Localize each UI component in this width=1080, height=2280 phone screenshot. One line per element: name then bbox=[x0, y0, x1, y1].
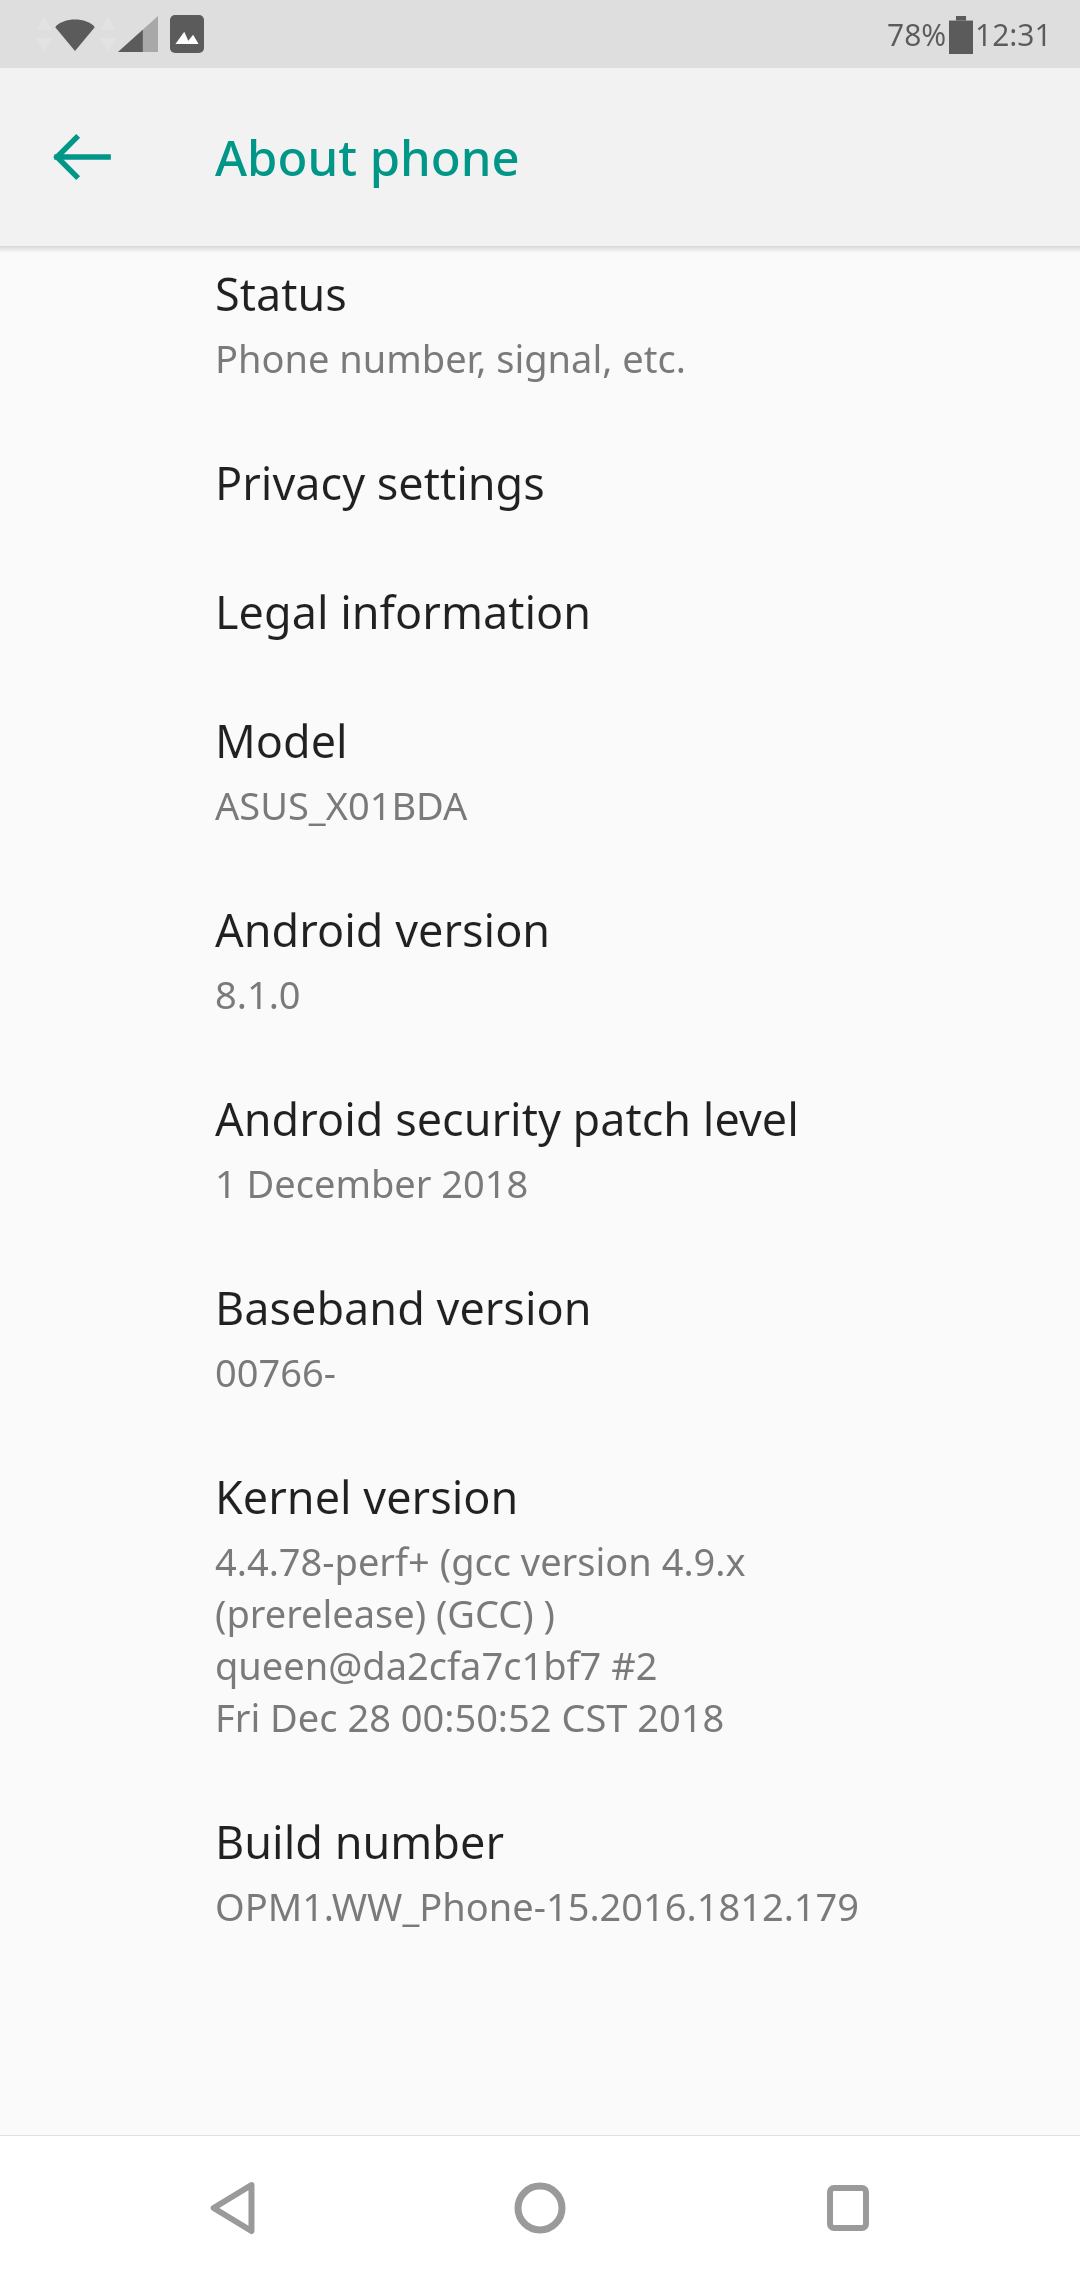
staticText: Kernel version bbox=[215, 1466, 519, 1527]
staticText: Model bbox=[215, 710, 348, 771]
staticText: queen@da2cfa7c1bf7 #2 bbox=[215, 1639, 658, 1691]
staticText: 78% bbox=[887, 14, 947, 55]
staticText: Android security patch level bbox=[215, 1088, 799, 1149]
staticText: Status bbox=[215, 263, 347, 324]
button[interactable]: Android version bbox=[215, 899, 865, 1020]
button[interactable]: Home bbox=[465, 2136, 615, 2280]
staticText: ASUS_X01BDA bbox=[215, 779, 468, 831]
button[interactable]: Build number bbox=[215, 1811, 865, 1932]
button[interactable]: Privacy settings bbox=[215, 452, 865, 513]
staticText: Baseband version bbox=[215, 1277, 592, 1338]
button[interactable]: Back bbox=[28, 103, 136, 211]
button[interactable]: Legal information bbox=[215, 581, 865, 642]
button[interactable]: Status bbox=[215, 263, 865, 384]
button[interactable]: Kernel version bbox=[215, 1466, 865, 1743]
staticText: 8.1.0 bbox=[215, 968, 301, 1020]
button[interactable]: Baseband version bbox=[215, 1277, 865, 1398]
staticText: 12:31 bbox=[975, 14, 1052, 55]
button[interactable]: Android security patch level bbox=[215, 1088, 865, 1209]
staticText: Privacy settings bbox=[215, 452, 545, 513]
staticText: Android version bbox=[215, 899, 551, 960]
staticText: 4.4.78-perf+ (gcc version 4.9.x 20150123 bbox=[215, 1535, 865, 1587]
staticText: Fri Dec 28 00:50:52 CST 2018 bbox=[215, 1691, 725, 1743]
staticText: OPM1.WW_Phone-15.2016.1812.179- bbox=[215, 1880, 865, 1932]
staticText: Legal information bbox=[215, 581, 592, 642]
button[interactable]: Recent apps bbox=[773, 2136, 923, 2280]
staticText: Phone number, signal, etc. bbox=[215, 332, 686, 384]
staticText: 00766-SDM660_GEN_PACK-1.173484.1 bbox=[215, 1346, 865, 1398]
staticText: 1 December 2018 bbox=[215, 1157, 529, 1209]
staticText: About phone bbox=[215, 124, 520, 191]
staticText: Build number bbox=[215, 1811, 504, 1872]
staticText: (prerelease) (GCC) ) bbox=[215, 1587, 555, 1639]
button[interactable]: Back bbox=[158, 2136, 308, 2280]
button[interactable]: Model bbox=[215, 710, 865, 831]
